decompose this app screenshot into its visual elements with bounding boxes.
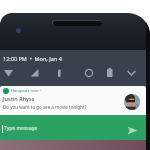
staticText: Do you want to go see a movie tonight? [3, 104, 87, 110]
staticText: Type message [4, 125, 38, 132]
staticText: Justin Rhyss [3, 95, 35, 102]
button[interactable]: Hangouts [0, 86, 146, 115]
staticText: Hangouts [11, 88, 30, 93]
staticText: 12:00 PM • Mon, Jan 4 [3, 55, 62, 62]
staticText: • now ^ [28, 88, 42, 93]
button[interactable]: Type message [0, 115, 146, 140]
